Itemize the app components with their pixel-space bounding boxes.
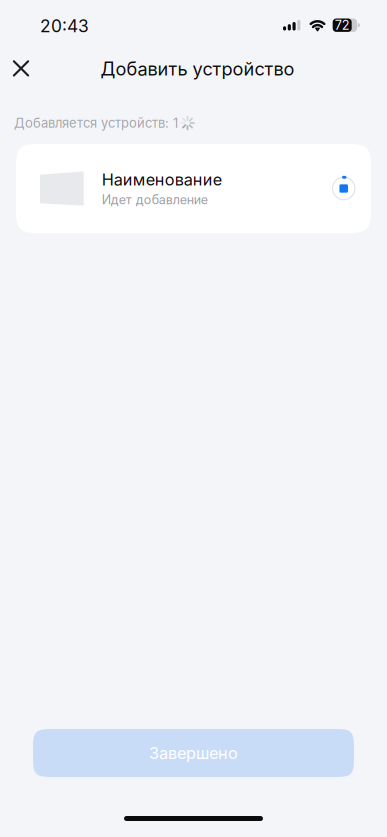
staticText: Завершено (149, 743, 238, 763)
button[interactable]: Закрыть (0, 46, 43, 90)
button[interactable]: Завершено (33, 729, 354, 777)
staticText: Добавляется устройств: 1 (14, 115, 178, 131)
staticText: 20:43 (40, 15, 89, 36)
staticText: Добавить устройство (100, 58, 294, 80)
staticText: Идет добавление (102, 192, 208, 207)
staticText: Наименование (102, 170, 222, 189)
button[interactable]: Остановить (324, 168, 364, 208)
staticText: 72 (335, 17, 350, 33)
